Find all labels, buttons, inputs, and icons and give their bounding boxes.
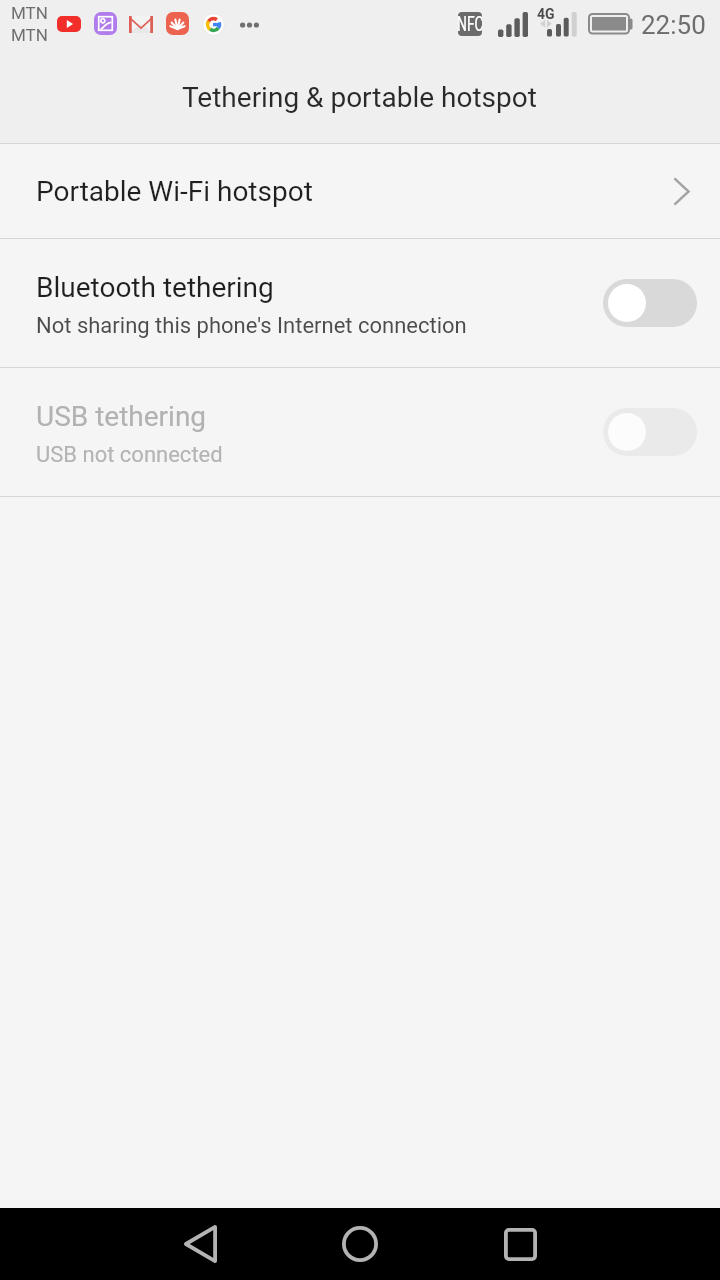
- staticText: 4G: [537, 6, 555, 22]
- staticText: MTN: [11, 25, 48, 45]
- button[interactable]: Portable Wi-Fi hotspot: [0, 144, 720, 238]
- staticText: 22:50: [641, 10, 706, 40]
- staticText: Bluetooth tethering: [36, 271, 274, 304]
- staticText: MTN: [11, 3, 48, 23]
- staticText: Not sharing this phone's Internet connec…: [36, 313, 467, 339]
- button[interactable]: USB tethering toggle: [603, 408, 697, 456]
- staticText: Tethering & portable hotspot: [182, 81, 537, 114]
- button[interactable]: Bluetooth tethering: [0, 239, 720, 367]
- staticText: USB not connected: [36, 442, 223, 468]
- staticText: USB tethering: [36, 400, 207, 433]
- button[interactable]: Recent apps: [480, 1208, 560, 1280]
- staticText: Portable Wi-Fi hotspot: [36, 175, 313, 208]
- button[interactable]: Home: [320, 1208, 400, 1280]
- button[interactable]: Bluetooth tethering toggle: [603, 279, 697, 327]
- button[interactable]: Back: [160, 1208, 240, 1280]
- staticText: NFC: [458, 12, 482, 36]
- button[interactable]: USB tethering: [0, 368, 720, 496]
